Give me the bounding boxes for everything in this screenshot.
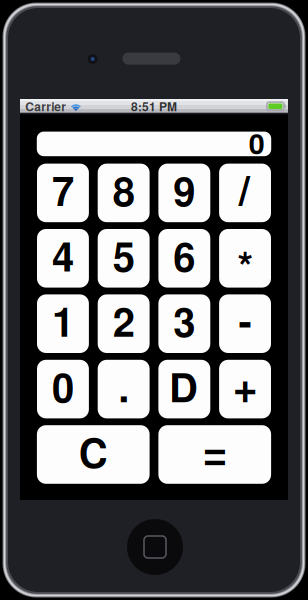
staticText: C	[79, 423, 108, 480]
staticText: D	[169, 357, 198, 415]
staticText: 1	[52, 292, 74, 349]
button[interactable]: *	[219, 229, 271, 288]
button[interactable]: -	[219, 294, 271, 353]
button[interactable]: 7	[37, 164, 89, 222]
button[interactable]: 6	[158, 229, 210, 288]
button[interactable]: 0	[37, 360, 89, 418]
button[interactable]: D	[158, 360, 210, 418]
staticText: =	[203, 436, 226, 480]
staticText: Carrier	[25, 98, 66, 115]
button[interactable]: /	[219, 164, 271, 222]
staticText: 0	[52, 357, 74, 415]
staticText: 5	[113, 226, 135, 284]
staticText: 9	[173, 161, 195, 218]
staticText: /	[239, 160, 250, 217]
button[interactable]: 2	[98, 294, 150, 353]
staticText: .	[118, 357, 129, 414]
staticText: -	[239, 290, 252, 348]
button[interactable]: 9	[158, 164, 210, 222]
button[interactable]: 3	[158, 294, 210, 353]
button[interactable]: C	[37, 425, 150, 484]
button[interactable]: 8	[98, 164, 150, 222]
staticText: 8:51 PM	[131, 98, 177, 115]
staticText: 6	[173, 226, 195, 284]
staticText: 7	[52, 161, 74, 218]
button[interactable]: 4	[37, 229, 89, 288]
staticText: 2	[113, 292, 135, 349]
staticText: 3	[173, 292, 195, 349]
button[interactable]: .	[98, 360, 150, 418]
button[interactable]: 1	[37, 294, 89, 353]
button[interactable]: =	[158, 425, 271, 484]
staticText: +	[234, 369, 257, 414]
staticText: 8	[113, 161, 135, 218]
staticText: 0	[249, 122, 265, 163]
button[interactable]: 5	[98, 229, 150, 288]
staticText: *	[237, 236, 253, 293]
button[interactable]: +	[219, 360, 271, 418]
staticText: 4	[52, 226, 74, 284]
